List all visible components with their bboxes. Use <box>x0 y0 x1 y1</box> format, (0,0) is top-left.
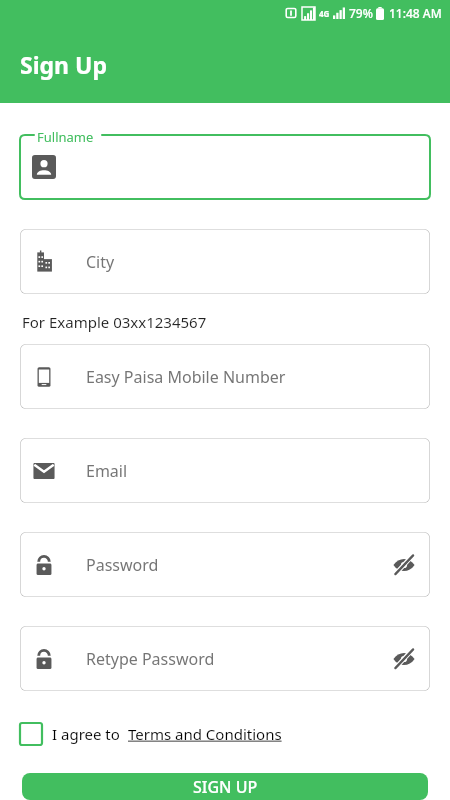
button[interactable]: Terms and Conditions <box>128 724 282 744</box>
button[interactable]: Password <box>20 532 430 597</box>
staticText: Easy Paisa Mobile Number <box>86 366 286 388</box>
button[interactable]: I agree to <box>20 717 282 751</box>
staticText: For Example 03xx1234567 <box>22 312 207 332</box>
staticText: I agree to <box>52 724 120 744</box>
staticText: Retype Password <box>86 648 215 670</box>
button[interactable]: City <box>20 229 430 294</box>
staticText: Fullname <box>37 128 94 146</box>
staticText: City <box>86 251 115 273</box>
staticText: Email <box>86 460 128 482</box>
button[interactable]: Email <box>20 438 430 503</box>
button[interactable]: Retype Password <box>20 626 430 691</box>
staticText: 11:48 AM <box>389 5 442 21</box>
other: Show password <box>392 553 416 577</box>
staticText: 79% <box>349 5 373 21</box>
button[interactable]: SIGN UP <box>22 773 428 800</box>
other: Show password <box>392 647 416 671</box>
button[interactable]: Fullname <box>20 127 430 199</box>
staticText: Password <box>86 554 159 576</box>
staticText: Sign Up <box>20 49 107 80</box>
staticText: 4G <box>319 8 330 19</box>
button[interactable]: Easy Paisa Mobile Number <box>20 344 430 409</box>
staticText: SIGN UP <box>193 776 258 798</box>
